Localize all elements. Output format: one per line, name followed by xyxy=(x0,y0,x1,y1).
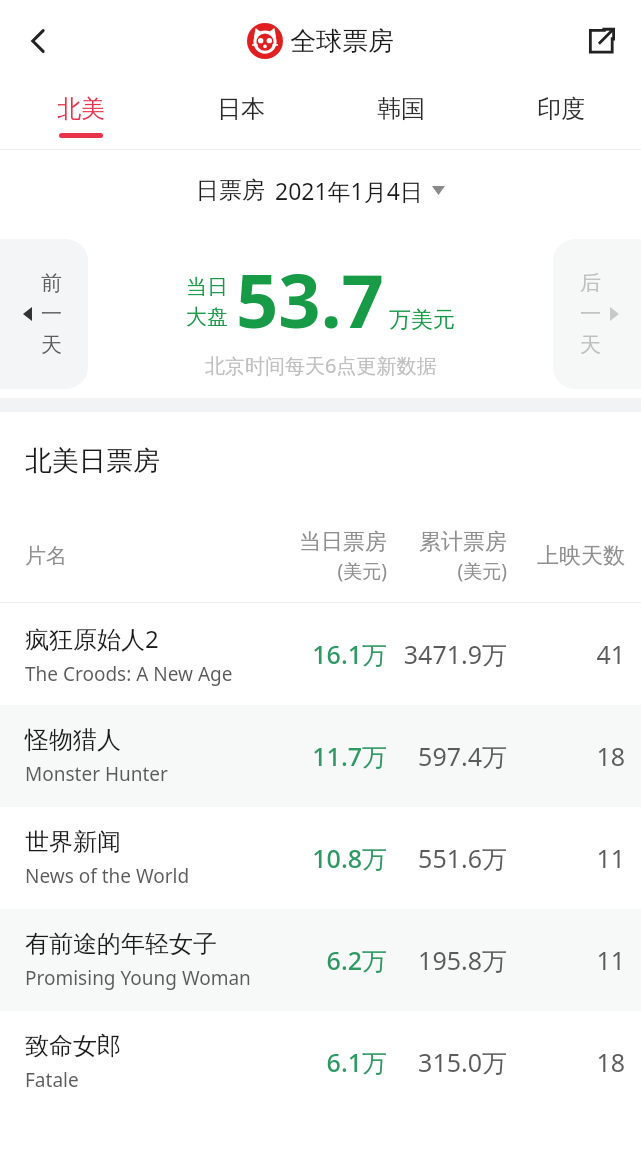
button[interactable]: Share xyxy=(575,15,627,67)
button[interactable]: 前 xyxy=(0,239,88,389)
staticText: 天 xyxy=(41,332,62,358)
staticText: News of the World xyxy=(25,863,190,889)
button[interactable]: 后 xyxy=(553,239,641,389)
staticText: 597.4万 xyxy=(418,739,507,773)
button[interactable]: 有前途的年轻女子 xyxy=(0,909,641,1011)
staticText: 万美元 xyxy=(389,306,455,334)
staticText: 18 xyxy=(596,1045,625,1079)
staticText: 前 xyxy=(41,270,62,296)
staticText: 6.2万 xyxy=(326,943,387,977)
button[interactable]: 韩国 xyxy=(321,82,481,150)
button[interactable]: 致命女郎 xyxy=(0,1011,641,1113)
staticText: 18 xyxy=(596,739,625,773)
staticText: 一 xyxy=(580,301,601,327)
staticText: 53.7 xyxy=(236,249,384,350)
staticText: 北美 xyxy=(57,94,105,124)
staticText: 疯狂原始人2 xyxy=(25,622,159,655)
button[interactable]: 印度 xyxy=(481,82,641,150)
staticText: 11 xyxy=(596,841,625,875)
staticText: 印度 xyxy=(537,94,585,124)
staticText: 有前途的年轻女子 xyxy=(25,929,217,959)
staticText: Promising Young Woman xyxy=(25,965,251,991)
staticText: 日本 xyxy=(217,94,265,124)
staticText: 韩国 xyxy=(377,94,425,124)
staticText: 195.8万 xyxy=(418,943,507,977)
staticText: (美元) xyxy=(337,558,387,584)
staticText: 551.6万 xyxy=(418,841,507,875)
button[interactable]: 北美 xyxy=(0,82,161,150)
staticText: 3471.9万 xyxy=(403,637,507,671)
staticText: 北美日票房 xyxy=(25,444,160,478)
staticText: 片名 xyxy=(25,543,67,569)
staticText: 10.8万 xyxy=(312,841,387,875)
button[interactable]: 疯狂原始人2 xyxy=(0,603,641,705)
staticText: Fatale xyxy=(25,1067,79,1093)
button[interactable]: 日票房 xyxy=(186,169,455,212)
staticText: 致命女郎 xyxy=(25,1031,121,1061)
staticText: 6.1万 xyxy=(326,1045,387,1079)
button[interactable]: 日本 xyxy=(161,82,321,150)
staticText: 16.1万 xyxy=(312,637,387,671)
staticText: 累计票房 xyxy=(419,528,507,556)
staticText: 上映天数 xyxy=(537,542,625,570)
staticText: (美元) xyxy=(457,558,507,584)
staticText: 11 xyxy=(596,943,625,977)
staticText: Monster Hunter xyxy=(25,761,168,787)
staticText: 41 xyxy=(596,637,625,671)
staticText: 大盘 xyxy=(186,304,228,330)
staticText: 全球票房 xyxy=(290,25,394,58)
button[interactable]: 怪物猎人 xyxy=(0,705,641,807)
staticText: 怪物猎人 xyxy=(25,725,121,755)
staticText: 北京时间每天6点更新数据 xyxy=(205,352,437,379)
staticText: 世界新闻 xyxy=(25,827,121,857)
staticText: 当日票房 xyxy=(299,528,387,556)
staticText: The Croods: A New Age xyxy=(25,661,233,687)
staticText: 日票房 xyxy=(196,176,265,205)
button[interactable]: 世界新闻 xyxy=(0,807,641,909)
staticText: 2021年1月4日 xyxy=(275,175,423,206)
staticText: 315.0万 xyxy=(418,1045,507,1079)
staticText: 天 xyxy=(580,332,601,358)
staticText: 后 xyxy=(580,270,601,296)
staticText: 11.7万 xyxy=(312,739,387,773)
staticText: 当日 xyxy=(186,274,228,300)
button[interactable]: Back xyxy=(12,14,66,68)
staticText: 一 xyxy=(41,301,62,327)
